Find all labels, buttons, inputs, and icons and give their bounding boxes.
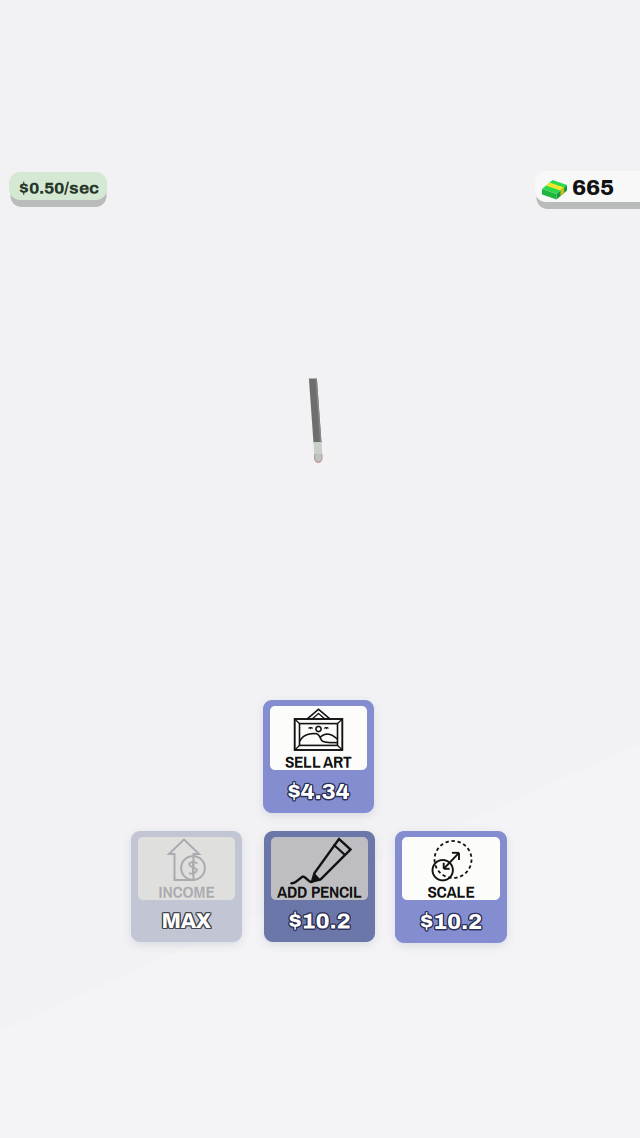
staticText: $4.34 [289,779,351,804]
staticText: $10.2 [290,909,352,933]
staticText: $10.2 [421,910,483,935]
staticText: $4.34 [286,780,348,805]
staticText: $10.2 [289,908,351,932]
staticText: $10.2 [288,910,350,935]
staticText: $10.2 [287,910,349,934]
staticText: $10.2 [288,909,350,933]
staticText: $0.50/sec [19,179,99,197]
staticText: $10.2 [419,910,481,935]
staticText: INCOME [158,880,214,903]
staticText: MAX [162,910,212,933]
button[interactable]: $0.50/sec [9,172,109,210]
staticText: SCALE [427,880,474,903]
staticText: $4.34 [288,778,350,803]
staticText: $10.2 [419,909,481,934]
staticText: $4.34 [287,778,349,802]
staticText: MAX [160,910,210,933]
button[interactable]: ADD PENCIL [264,831,375,942]
button[interactable]: 665 [535,171,640,211]
staticText: $10.2 [419,908,481,933]
staticText: MAX [162,908,212,932]
button[interactable]: INCOME [131,831,242,942]
staticText: MAX [161,909,211,933]
staticText: $4.34 [287,779,349,804]
staticText: $10.2 [288,907,350,932]
staticText: MAX [160,909,210,933]
button[interactable]: SCALE [395,831,507,943]
staticText: $4.34 [286,779,348,804]
staticText: $4.34 [286,778,348,803]
staticText: $10.2 [420,910,482,935]
staticText: $10.2 [421,908,483,933]
staticText: ADD PENCIL [277,880,362,903]
staticText: $4.34 [287,780,349,805]
staticText: 665 [572,175,614,200]
staticText: $10.2 [421,909,483,934]
staticText: $10.2 [289,910,351,934]
staticText: $10.2 [420,908,482,932]
staticText: MAX [161,911,211,934]
staticText: $10.2 [287,909,349,933]
staticText: SELL ART [285,750,352,773]
staticText: $4.34 [288,780,350,805]
staticText: MAX [160,908,210,932]
staticText: $10.2 [287,908,349,932]
staticText: $10.2 [420,909,482,934]
button[interactable]: SELL ART [263,700,374,813]
staticText: MAX [163,909,213,933]
staticText: MAX [161,908,211,931]
